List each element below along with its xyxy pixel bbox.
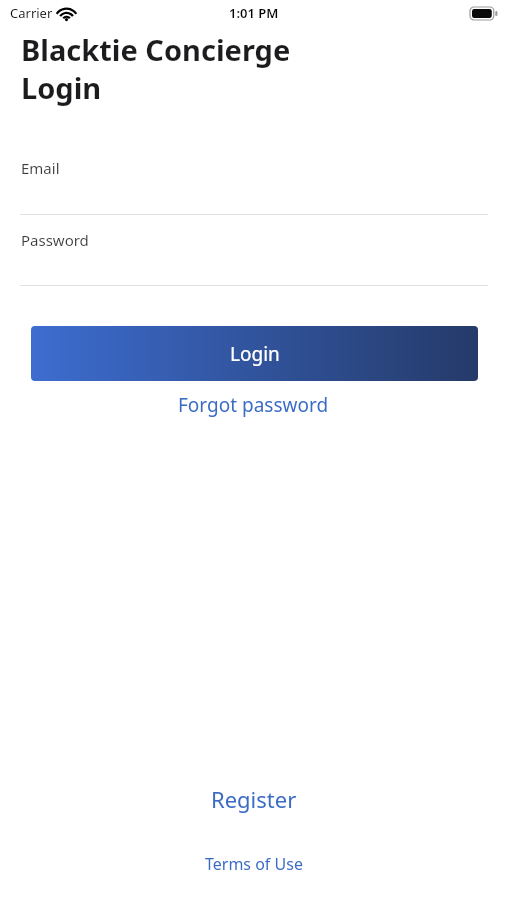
staticText: Carrier [10, 4, 53, 22]
staticText: Email [21, 158, 60, 178]
button[interactable]: Password [0, 230, 507, 286]
staticText: Register [211, 784, 297, 814]
staticText: Blacktie Concierge Login [21, 30, 291, 107]
button[interactable]: Register [211, 784, 297, 814]
staticText: 1:01 PM [229, 4, 279, 22]
button[interactable]: Email [0, 158, 507, 215]
staticText: Login [230, 341, 280, 367]
staticText: Forgot password [178, 392, 329, 418]
staticText: Terms of Use [205, 853, 303, 875]
button[interactable]: Login [31, 326, 478, 381]
button[interactable]: Forgot password [178, 392, 329, 418]
staticText: Password [21, 230, 89, 250]
button[interactable]: Terms of Use [205, 853, 303, 875]
